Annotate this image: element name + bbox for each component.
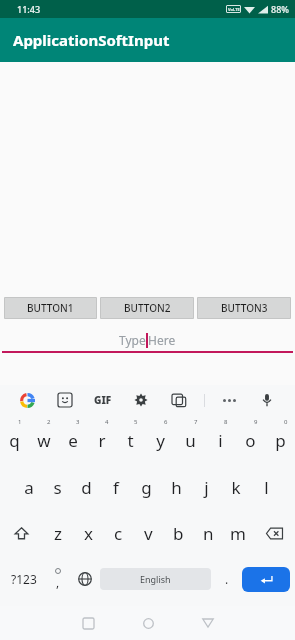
staticText: 2	[47, 418, 51, 426]
staticText: Type	[119, 332, 146, 348]
button[interactable]: Home	[118, 606, 178, 640]
staticText: w	[37, 429, 51, 452]
button[interactable]: Emoji and comma	[44, 556, 71, 602]
button[interactable]: j	[191, 464, 221, 510]
button[interactable]: u	[175, 417, 205, 464]
staticText: 3	[76, 418, 80, 426]
staticText: English	[140, 573, 171, 585]
staticText: f	[113, 476, 119, 499]
staticText: s	[53, 476, 62, 499]
button[interactable]: BUTTON2	[100, 297, 194, 319]
button[interactable]: Recent apps	[58, 606, 118, 640]
staticText: g	[141, 476, 152, 499]
button[interactable]: More options	[210, 385, 248, 415]
staticText: ?123	[11, 571, 37, 587]
staticText: BUTTON1	[27, 301, 74, 315]
button[interactable]: x	[73, 510, 103, 556]
staticText: 9	[254, 418, 258, 426]
staticText: 5	[134, 418, 138, 426]
button[interactable]: BUTTON1	[4, 297, 97, 319]
staticText: Here	[148, 332, 176, 348]
button[interactable]: g	[131, 464, 161, 510]
button[interactable]: o	[235, 417, 265, 464]
button[interactable]: c	[103, 510, 133, 556]
button[interactable]: d	[72, 464, 101, 510]
staticText: .	[225, 571, 229, 587]
staticText: 4	[105, 418, 109, 426]
staticText: 0	[284, 418, 288, 426]
staticText: 1	[18, 418, 22, 426]
staticText: t	[127, 429, 134, 452]
button[interactable]: Translate	[160, 385, 198, 415]
button[interactable]: Stickers	[46, 385, 84, 415]
staticText: 88%	[271, 3, 289, 15]
staticText: e	[68, 429, 78, 452]
staticText: h	[171, 476, 182, 499]
staticText: d	[81, 476, 92, 499]
staticText: 7	[194, 418, 198, 426]
staticText: i	[218, 429, 223, 452]
button[interactable]: a	[14, 464, 43, 510]
button[interactable]: l	[251, 464, 281, 510]
staticText: l	[264, 476, 269, 499]
staticText: GIF	[94, 393, 112, 407]
staticText: VoLTE	[228, 7, 240, 12]
staticText: n	[203, 522, 214, 545]
staticText: o	[245, 429, 256, 452]
button[interactable]: .	[213, 556, 240, 602]
staticText: p	[275, 429, 286, 452]
button[interactable]: Voice input	[248, 385, 286, 415]
button[interactable]: q	[0, 417, 29, 464]
button[interactable]: Keyboard settings	[122, 385, 160, 415]
button[interactable]: s	[43, 464, 72, 510]
button[interactable]: h	[161, 464, 191, 510]
staticText: y	[156, 429, 165, 452]
staticText: ApplicationSoftInput	[13, 30, 170, 50]
button[interactable]: English	[100, 568, 211, 590]
button[interactable]: ?123	[3, 556, 44, 602]
staticText: x	[84, 522, 93, 545]
button[interactable]: Back	[178, 606, 238, 640]
staticText: q	[9, 429, 20, 452]
button[interactable]: m	[223, 510, 253, 556]
staticText: 8	[224, 418, 228, 426]
button[interactable]: v	[133, 510, 163, 556]
button[interactable]: Change language	[71, 556, 98, 602]
button[interactable]: GIF	[84, 385, 122, 415]
staticText: b	[173, 522, 184, 545]
button[interactable]: p	[265, 417, 295, 464]
staticText: BUTTON2	[124, 301, 171, 315]
staticText: z	[54, 522, 62, 545]
staticText: v	[144, 522, 153, 545]
staticText: BUTTON3	[221, 301, 268, 315]
button[interactable]: w	[29, 417, 58, 464]
button[interactable]: k	[221, 464, 251, 510]
button[interactable]: Shift	[0, 510, 43, 556]
button[interactable]: i	[205, 417, 235, 464]
staticText: a	[24, 476, 34, 499]
staticText: r	[98, 429, 106, 452]
button[interactable]: f	[101, 464, 131, 510]
button[interactable]: e	[58, 417, 87, 464]
staticText: c	[114, 522, 123, 545]
staticText: m	[230, 522, 246, 545]
button[interactable]: n	[193, 510, 223, 556]
button[interactable]: r	[87, 417, 116, 464]
button[interactable]: BUTTON3	[197, 297, 291, 319]
staticText: j	[204, 476, 209, 499]
staticText: u	[185, 429, 196, 452]
button[interactable]: y	[145, 417, 175, 464]
button[interactable]: Enter	[242, 567, 290, 592]
staticText: 11:43	[17, 3, 41, 15]
button[interactable]: z	[43, 510, 73, 556]
button[interactable]: Backspace	[253, 510, 295, 556]
staticText: 6	[164, 418, 168, 426]
staticText: k	[231, 476, 241, 499]
button[interactable]: Google Search	[9, 385, 46, 415]
button[interactable]: Type	[4, 329, 291, 351]
staticText: ,	[56, 574, 60, 590]
button[interactable]: t	[116, 417, 145, 464]
button[interactable]: b	[163, 510, 193, 556]
